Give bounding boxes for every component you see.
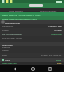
- button[interactable]: Tags: Max All, All Up-2020-1 1027: [0, 12, 64, 16]
- staticText: 148.500 588: [48, 25, 62, 28]
- staticText: Tags: Max All, All Up-2020-1 1027: [2, 13, 41, 16]
- button[interactable]: Search: [29, 4, 43, 7]
- staticText: Sat Ant Bandwidth: [2, 33, 22, 36]
- button[interactable]: Stats Info: [0, 42, 64, 46]
- button[interactable]: Sat Ant Bandwidth: [0, 32, 64, 36]
- staticText: Satellite: [2, 46, 10, 49]
- staticText: 15.4dB: [54, 29, 62, 32]
- staticText: Power: [2, 29, 9, 32]
- button[interactable]: SNR 20.4dB Lvl 66: [0, 36, 64, 40]
- button[interactable]: Realtime Info: [0, 20, 64, 24]
- button[interactable]: Auto Reload: [0, 8, 32, 12]
- staticText: Realtime Info: [5, 21, 21, 24]
- button[interactable]: Lock: [0, 58, 64, 62]
- staticText: 0.00: [57, 62, 62, 65]
- button[interactable]: Rate: [0, 53, 64, 57]
- staticText: 100.0 kHz: [51, 33, 62, 36]
- button[interactable]: Power: [0, 28, 64, 32]
- button[interactable]: Recents: [46, 65, 53, 72]
- staticText: SNR 20.4dB Lvl 66: [2, 37, 22, 40]
- staticText: Auto Scan ON: [2, 62, 17, 65]
- button[interactable]: Auto Scan ON: [0, 62, 64, 65]
- staticText: Super Max SD Usb 2020 S 1027: [2, 17, 37, 20]
- staticText: 27500 3/4 DVB-S2: [41, 54, 62, 57]
- staticText: Select Counter: [40, 9, 57, 12]
- staticText: Stats Info: [2, 43, 13, 46]
- button[interactable]: Select Counter: [32, 8, 64, 12]
- staticText: Transp: [2, 49, 9, 52]
- button[interactable]: Frequency: [0, 24, 64, 28]
- button[interactable]: Back: [11, 65, 18, 72]
- staticText: Rate: [2, 54, 7, 57]
- button[interactable]: Home: [29, 65, 36, 72]
- staticText: Auto Reload: [9, 9, 23, 12]
- button[interactable]: Super Max SD Usb 2020 S 1027: [0, 16, 64, 20]
- staticText: Frequency: [2, 25, 14, 28]
- staticText: Lock: [5, 59, 10, 62]
- staticText: Scan: [56, 59, 62, 62]
